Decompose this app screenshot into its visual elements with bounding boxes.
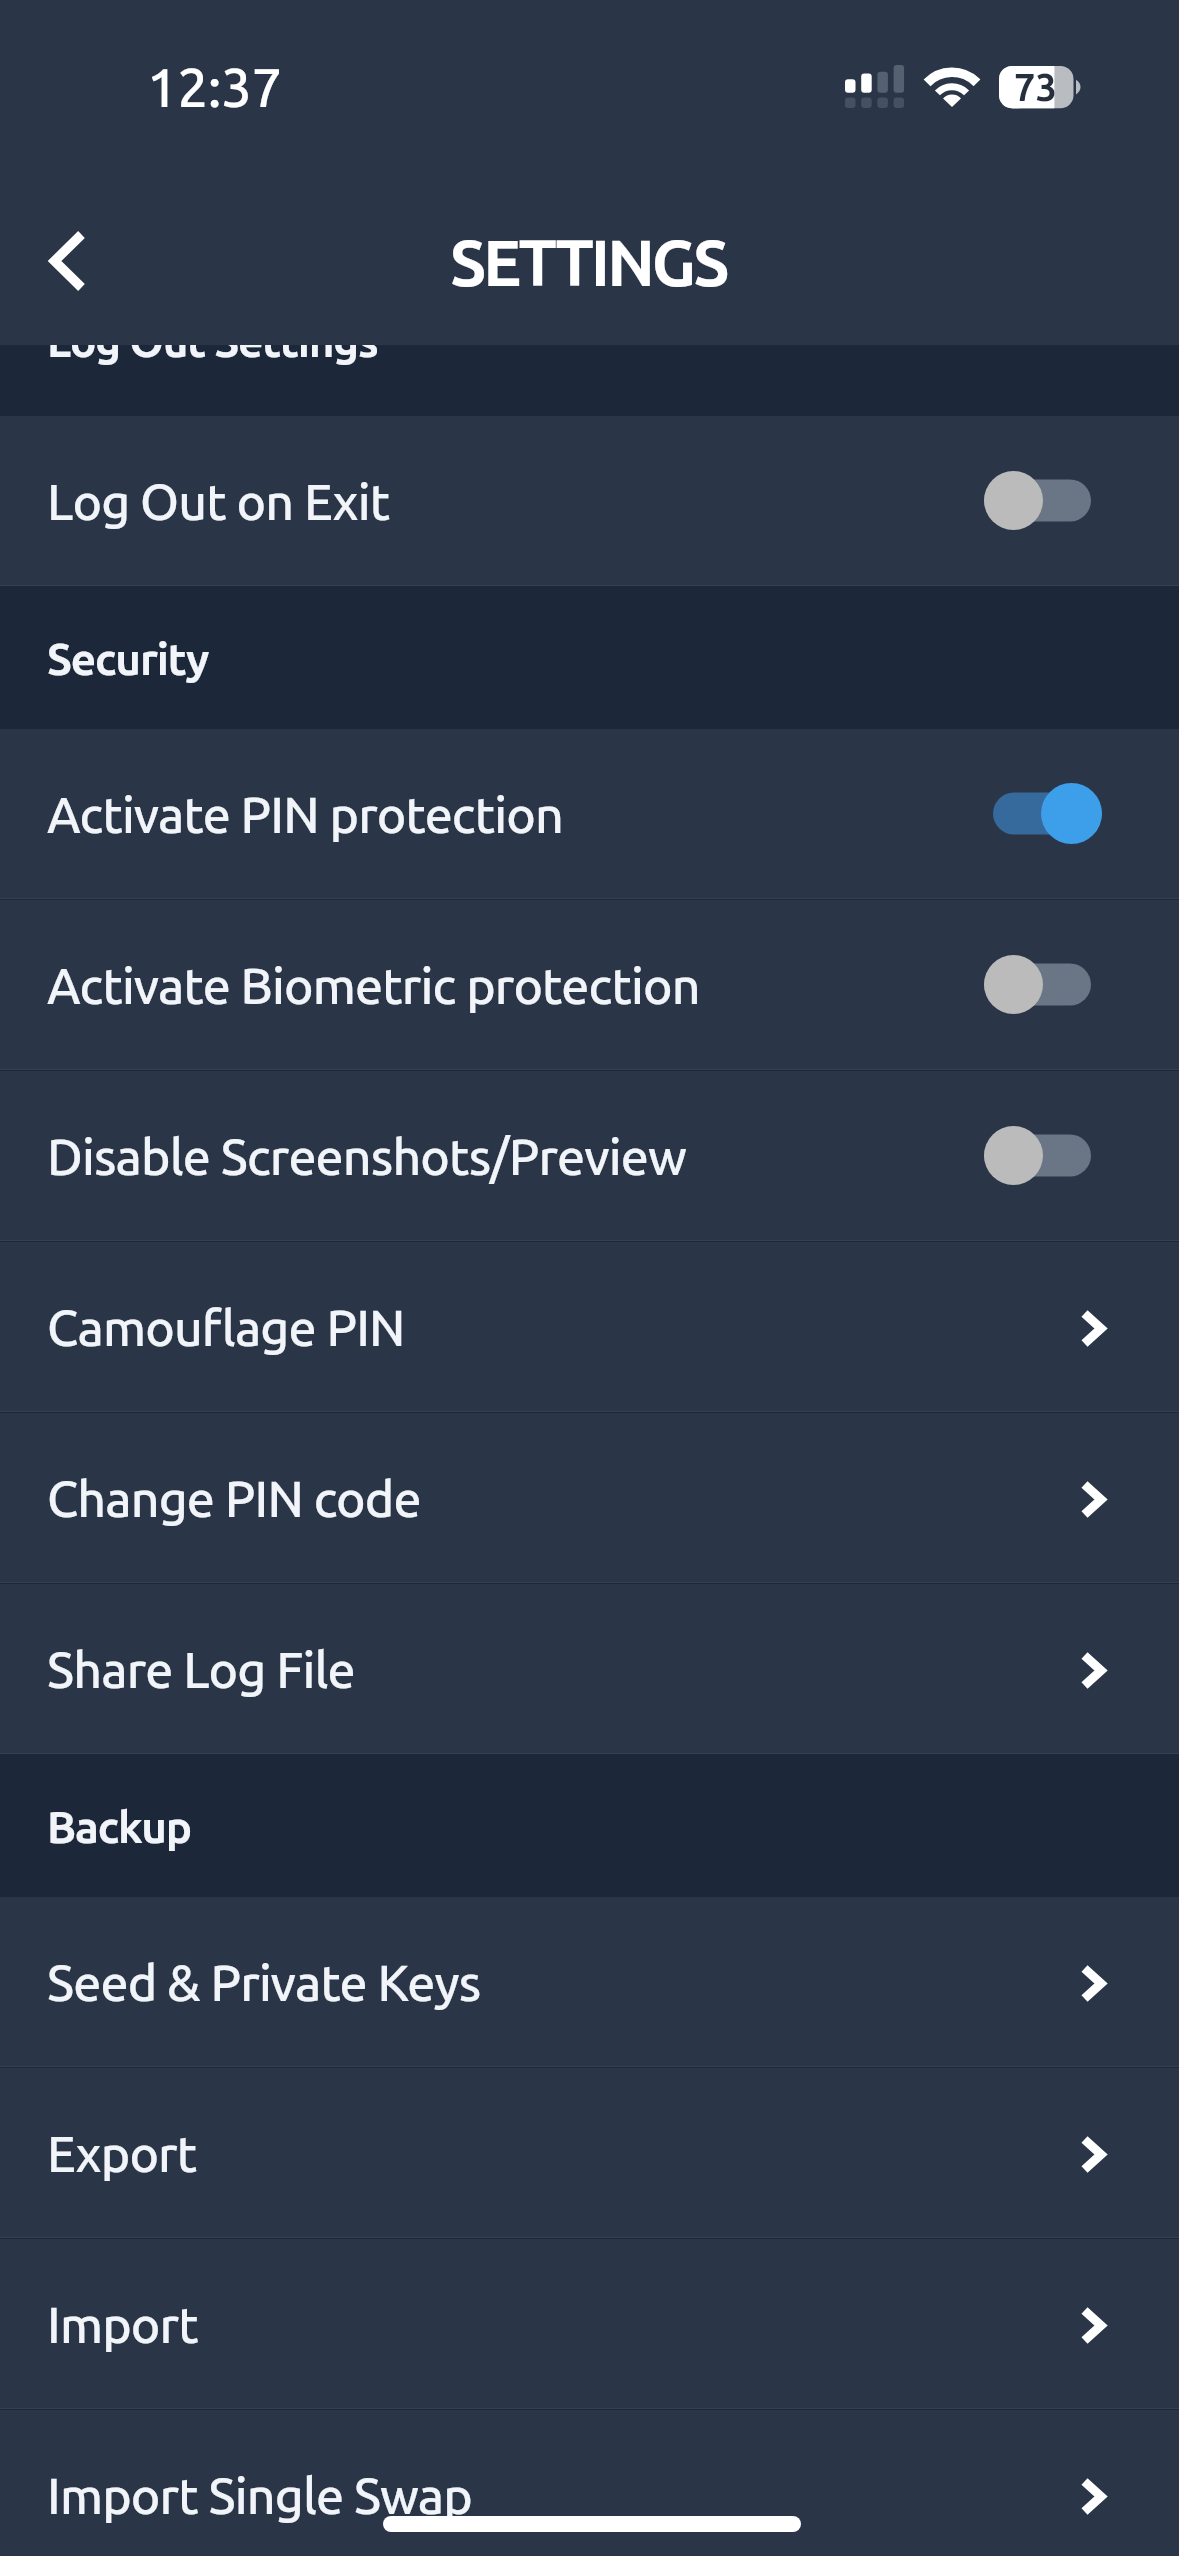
button[interactable]: Share Log File bbox=[0, 1584, 1179, 1753]
staticText: Import bbox=[47, 2296, 198, 2352]
button[interactable]: Log Out on Exit bbox=[0, 416, 1179, 585]
staticText: Import Single Swap bbox=[47, 2467, 472, 2523]
button[interactable]: Activate PIN protection bbox=[0, 729, 1179, 898]
button[interactable]: Disable Screenshots/Preview bbox=[0, 1071, 1179, 1240]
staticText: 12:37 bbox=[147, 57, 283, 118]
staticText: 73 bbox=[1014, 66, 1057, 109]
staticText: Export bbox=[47, 2125, 197, 2181]
button[interactable]: Import bbox=[0, 2239, 1179, 2408]
button[interactable]: Change PIN code bbox=[0, 1413, 1179, 1582]
staticText: Activate PIN protection bbox=[47, 786, 563, 842]
button[interactable]: Seed & Private Keys bbox=[0, 1897, 1179, 2066]
staticText: Share Log File bbox=[47, 1641, 355, 1697]
button[interactable]: Camouflage PIN bbox=[0, 1242, 1179, 1411]
staticText: SETTINGS bbox=[450, 226, 727, 298]
staticText: Disable Screenshots/Preview bbox=[47, 1128, 686, 1184]
staticText: Activate Biometric protection bbox=[47, 957, 700, 1013]
staticText: Log Out on Exit bbox=[47, 473, 390, 529]
button[interactable]: Back bbox=[3, 201, 133, 321]
button[interactable]: Activate Biometric protection bbox=[0, 900, 1179, 1069]
staticText: Change PIN code bbox=[47, 1470, 421, 1526]
button[interactable]: Import Single Swap bbox=[0, 2410, 1179, 2556]
button[interactable]: Export bbox=[0, 2068, 1179, 2237]
staticText: Backup bbox=[47, 1802, 191, 1851]
staticText: Log Out Settings bbox=[47, 345, 378, 365]
staticText: Seed & Private Keys bbox=[47, 1954, 481, 2010]
staticText: Security bbox=[47, 634, 209, 683]
staticText: Camouflage PIN bbox=[47, 1299, 405, 1355]
